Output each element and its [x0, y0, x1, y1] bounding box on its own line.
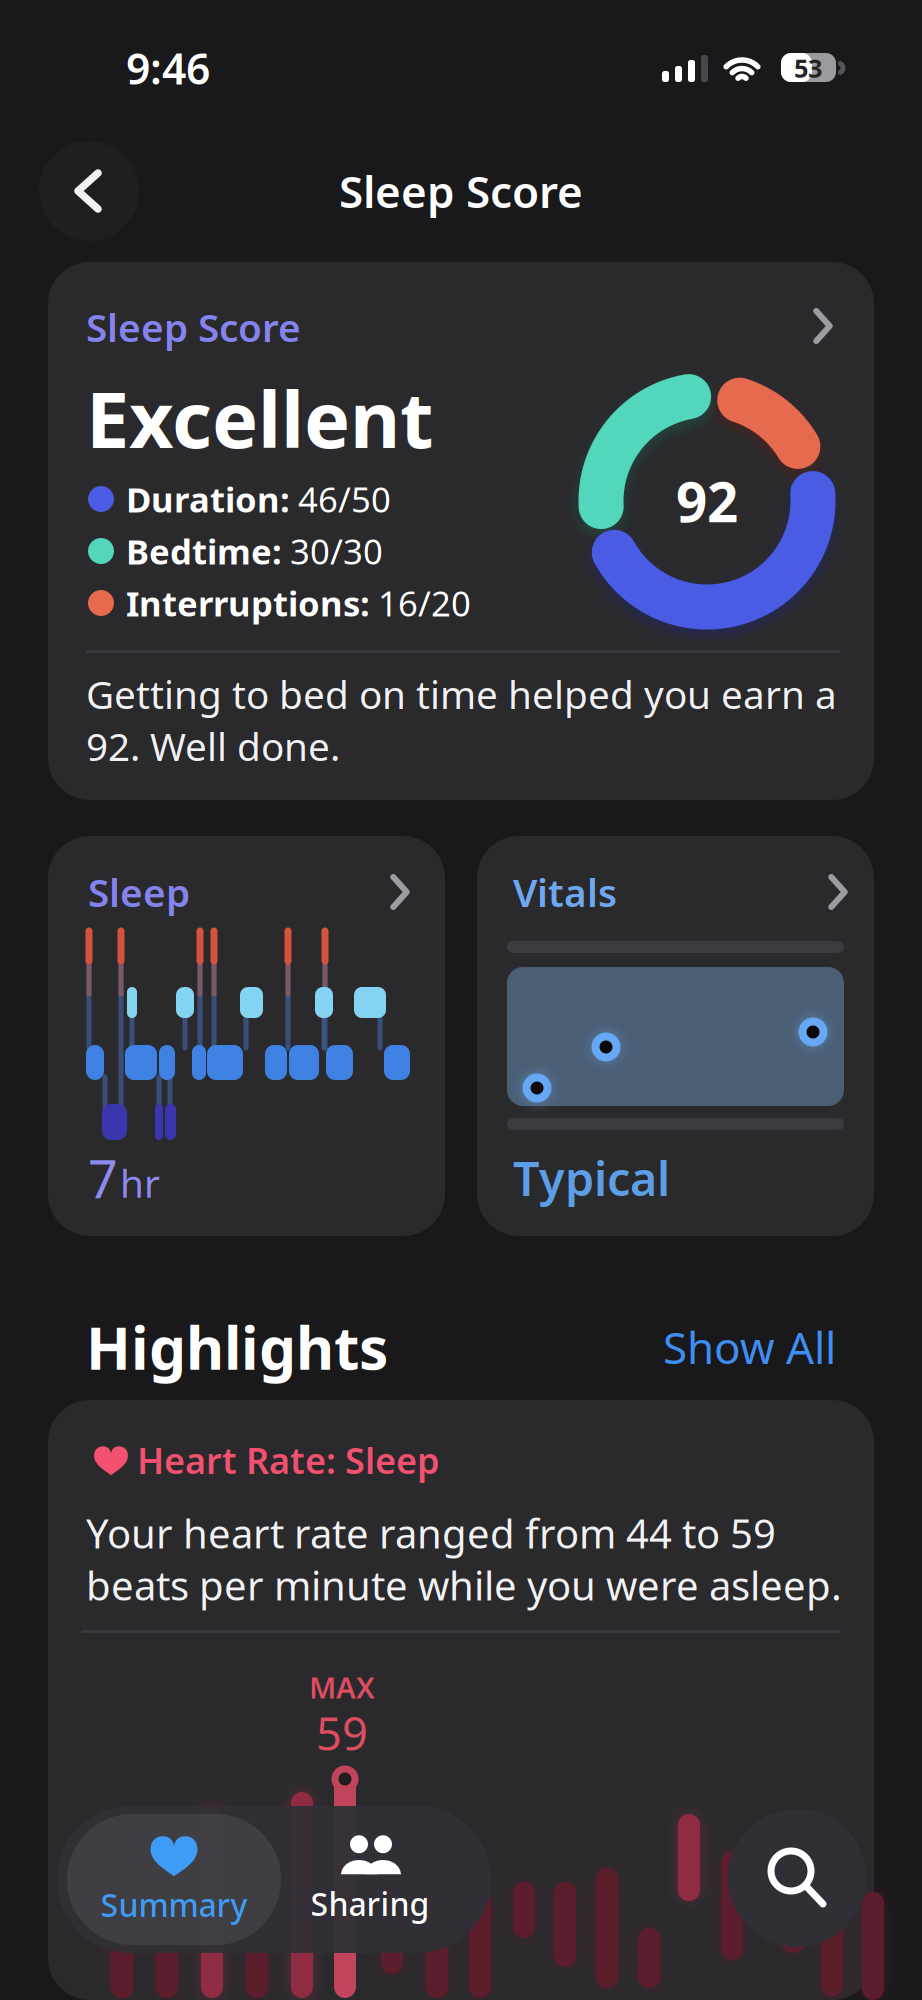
- staticText: 16/20: [378, 580, 471, 626]
- staticText: 9:46: [126, 40, 210, 96]
- staticText: Excellent: [86, 367, 434, 469]
- button[interactable]: Search: [728, 1809, 866, 1947]
- button[interactable]: Sleep: [48, 836, 445, 1236]
- staticText: Summary: [100, 1883, 247, 1926]
- staticText: Interruptions:: [126, 580, 370, 626]
- staticText: Duration:: [126, 476, 290, 522]
- staticText: 53: [794, 51, 822, 85]
- staticText: Getting to bed on time helped you earn a: [86, 668, 837, 720]
- staticText: Typical: [513, 1147, 670, 1209]
- staticText: Your heart rate ranged from 44 to 59: [86, 1506, 776, 1559]
- button[interactable]: Sharing: [280, 1814, 460, 1945]
- button[interactable]: Sleep Score: [48, 262, 874, 800]
- button[interactable]: Heart Rate: Sleep: [48, 1400, 874, 2000]
- staticText: Sleep Score: [339, 162, 583, 220]
- staticText: Highlights: [86, 1308, 388, 1386]
- staticText: 30/30: [290, 528, 383, 574]
- staticText: 92: [676, 465, 738, 537]
- staticText: hr: [120, 1157, 160, 1208]
- staticText: Bedtime:: [126, 528, 282, 574]
- staticText: 92. Well done.: [86, 720, 340, 772]
- staticText: Sleep: [88, 866, 190, 918]
- staticText: Heart Rate: Sleep: [137, 1436, 440, 1484]
- staticText: Vitals: [513, 866, 617, 918]
- staticText: Sharing: [310, 1882, 429, 1925]
- button[interactable]: Back: [39, 141, 139, 241]
- button[interactable]: Vitals: [477, 836, 874, 1236]
- staticText: Sleep Score: [86, 301, 301, 353]
- staticText: 59: [316, 1703, 368, 1763]
- staticText: 7: [88, 1143, 118, 1213]
- staticText: beats per minute while you were asleep.: [86, 1558, 842, 1611]
- button[interactable]: Show All: [536, 1318, 836, 1376]
- staticText: 46/50: [298, 476, 391, 522]
- staticText: MAX: [309, 1667, 375, 1706]
- staticText: Show All: [663, 1318, 836, 1376]
- button[interactable]: Summary: [67, 1814, 281, 1945]
